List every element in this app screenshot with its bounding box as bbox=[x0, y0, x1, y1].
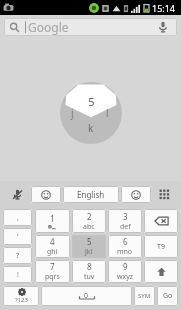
staticText: 2 bbox=[87, 211, 92, 222]
button[interactable]: Shift bbox=[144, 260, 178, 283]
staticText: 0 bbox=[84, 291, 89, 301]
staticText: 8 bbox=[87, 261, 92, 272]
staticText: ' bbox=[17, 232, 19, 242]
button[interactable]: SYM bbox=[134, 286, 155, 306]
button[interactable]: Character chooser bbox=[60, 82, 122, 144]
button[interactable]: English bbox=[63, 186, 119, 203]
staticText: 1 bbox=[50, 213, 55, 224]
button[interactable]: Emoji bbox=[121, 186, 151, 203]
staticText: ? bbox=[16, 251, 20, 261]
button[interactable]: Google bbox=[4, 18, 177, 36]
staticText: 3 bbox=[123, 211, 128, 222]
staticText: English bbox=[77, 189, 105, 200]
button[interactable]: 8 bbox=[72, 260, 106, 283]
staticText: mno bbox=[117, 247, 133, 257]
staticText: j bbox=[71, 106, 74, 120]
staticText: 5 bbox=[88, 94, 95, 109]
staticText: ?123 bbox=[15, 296, 28, 304]
staticText: , bbox=[17, 213, 19, 223]
button[interactable]: Emoji bbox=[31, 186, 61, 203]
button[interactable]: 6 bbox=[108, 235, 142, 258]
button[interactable]: Voice search bbox=[154, 18, 172, 36]
staticText: 15:14 bbox=[152, 2, 176, 14]
staticText: ! bbox=[17, 270, 19, 280]
button[interactable]: 1 bbox=[35, 209, 70, 233]
button[interactable]: 2 bbox=[72, 209, 106, 233]
staticText: l bbox=[106, 106, 109, 120]
button[interactable]: 3 bbox=[108, 209, 142, 233]
staticText: def bbox=[120, 222, 131, 232]
button[interactable]: 9 bbox=[108, 260, 142, 283]
staticText: Go bbox=[163, 291, 173, 301]
staticText: pqrs bbox=[45, 272, 60, 282]
staticText: 4 bbox=[50, 236, 55, 247]
staticText: 9 bbox=[123, 261, 128, 272]
button[interactable]: ? bbox=[3, 247, 32, 264]
button[interactable]: Backspace bbox=[144, 209, 178, 233]
button[interactable]: 5 bbox=[72, 235, 106, 258]
staticText: tuv bbox=[84, 272, 95, 282]
staticText: 5 bbox=[87, 236, 92, 247]
button[interactable]: Voice input bbox=[3, 181, 31, 207]
staticText: Google bbox=[28, 19, 69, 35]
staticText: SYM bbox=[138, 292, 151, 300]
staticText: abc bbox=[83, 222, 95, 232]
staticText: T9 bbox=[157, 242, 165, 252]
staticText: 7 bbox=[50, 261, 55, 272]
button[interactable]: Go bbox=[157, 286, 178, 306]
staticText: k bbox=[88, 121, 94, 135]
button[interactable]: ' bbox=[3, 228, 32, 245]
staticText: ghi bbox=[47, 247, 58, 257]
button[interactable]: , bbox=[3, 209, 32, 226]
button[interactable]: T9 bbox=[144, 235, 178, 258]
staticText: 6 bbox=[123, 236, 128, 247]
staticText: wxyz bbox=[117, 272, 134, 282]
button[interactable]: ! bbox=[3, 266, 32, 283]
button[interactable]: Settings, symbols bbox=[3, 286, 39, 306]
button[interactable]: 7 bbox=[35, 260, 70, 283]
button[interactable]: 4 bbox=[35, 235, 70, 258]
staticText: jkl bbox=[85, 247, 93, 257]
button[interactable]: Space bbox=[41, 286, 132, 306]
button[interactable]: Choose keyboard bbox=[151, 181, 178, 207]
